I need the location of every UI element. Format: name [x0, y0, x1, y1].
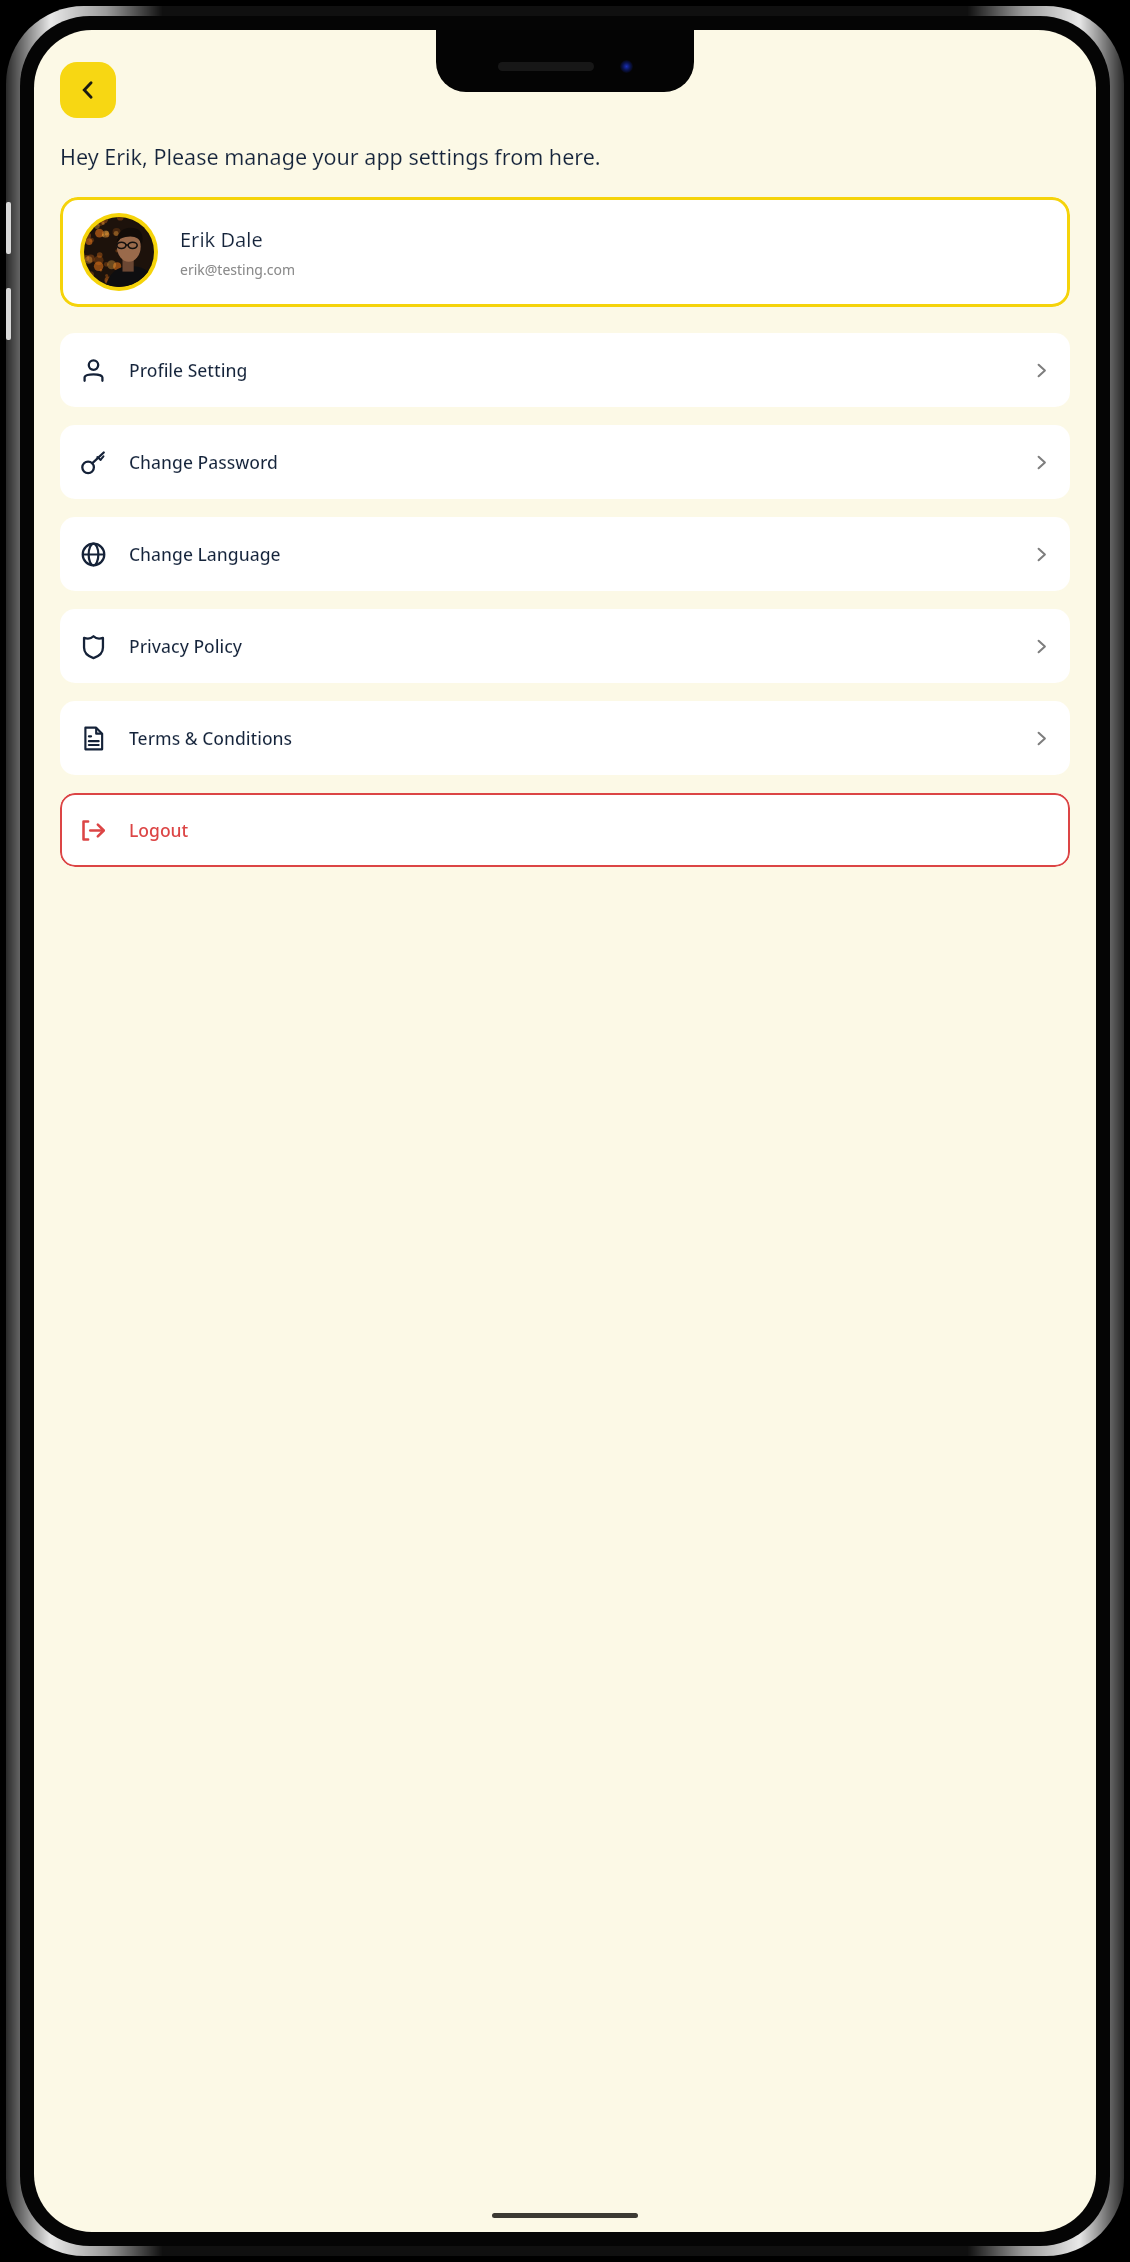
button[interactable]: Profile Setting [60, 333, 1070, 407]
button[interactable]: Change Password [60, 425, 1070, 499]
staticText: Terms & Conditions [129, 726, 1033, 750]
staticText: Hey Erik, Please manage your app setting… [60, 142, 601, 171]
button[interactable]: Erik Dale [60, 197, 1070, 307]
staticText: Change Password [129, 450, 1033, 474]
staticText: Privacy Policy [129, 634, 1033, 658]
button[interactable]: Change Language [60, 517, 1070, 591]
button[interactable]: Back [60, 62, 116, 118]
button[interactable]: Terms & Conditions [60, 701, 1070, 775]
staticText: Erik Dale [180, 226, 263, 253]
button[interactable]: Logout [60, 793, 1070, 867]
button[interactable]: Privacy Policy [60, 609, 1070, 683]
staticText: Logout [129, 818, 189, 842]
staticText: erik@testing.com [180, 260, 295, 279]
staticText: Change Language [129, 542, 1033, 566]
staticText: Profile Setting [129, 358, 1033, 382]
